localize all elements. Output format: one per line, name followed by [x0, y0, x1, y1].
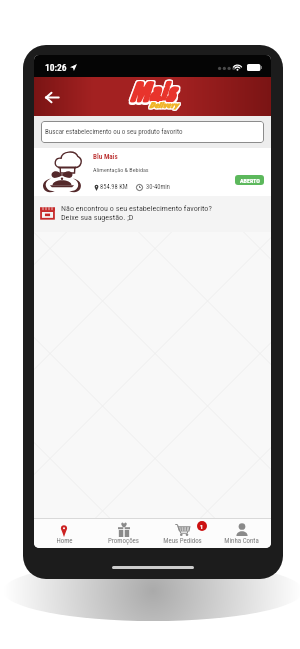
staticText: Mais — [130, 77, 176, 109]
staticText: Meus Pedidos — [163, 537, 202, 545]
staticText: 1 — [200, 523, 204, 530]
button[interactable]: Não encontrou o seu estabelecimento favo… — [34, 196, 271, 232]
staticText: Delivery — [150, 100, 179, 109]
button[interactable]: Buscar estabelecimento ou o seu produto … — [41, 121, 264, 143]
staticText: Deixe sua sugestão. ;D — [61, 212, 134, 221]
staticText: Delivery — [148, 100, 177, 109]
staticText: Buscar estabelecimento ou o seu produto … — [45, 128, 183, 136]
staticText: Blu Mais — [93, 152, 118, 160]
staticText: Delivery — [148, 102, 177, 111]
staticText: Delivery — [149, 101, 178, 110]
button[interactable]: 1 — [153, 522, 212, 545]
staticText: Home — [56, 537, 73, 545]
staticText: Não encontrou o seu estabelecimento favo… — [61, 203, 212, 212]
staticText: Delivery — [150, 102, 179, 111]
staticText: Delivery — [149, 100, 178, 109]
button[interactable]: Back — [38, 84, 64, 110]
staticText: 30-40min — [146, 183, 170, 191]
staticText: Delivery — [149, 102, 178, 111]
staticText: Mais — [128, 79, 174, 110]
staticText: Mais — [129, 79, 175, 110]
staticText: ABERTO — [240, 177, 260, 184]
staticText: Mais — [128, 76, 174, 108]
staticText: Delivery — [148, 101, 177, 110]
button[interactable]: Minha Conta — [212, 522, 271, 545]
staticText: Mais — [128, 77, 174, 109]
staticText: 854.98 KM — [100, 183, 128, 191]
button[interactable]: Blu Mais — [34, 148, 271, 196]
staticText: 10:26 — [45, 62, 67, 73]
staticText: Minha Conta — [224, 537, 259, 545]
staticText: Mais — [130, 79, 176, 110]
staticText: Mais — [130, 76, 176, 108]
button[interactable]: Promoções — [94, 522, 153, 545]
staticText: Mais — [129, 76, 175, 108]
staticText: Alimentação & Bebidas — [93, 166, 149, 173]
button[interactable]: Home — [34, 522, 94, 545]
staticText: Mais — [129, 77, 175, 109]
staticText: Delivery — [150, 101, 179, 110]
staticText: Promoções — [108, 537, 139, 545]
